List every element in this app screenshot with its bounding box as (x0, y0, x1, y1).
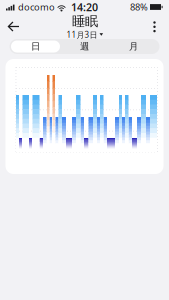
staticText: 11月3日 (66, 29, 97, 40)
button[interactable]: Back (0, 14, 29, 38)
button[interactable]: 11月3日 (66, 29, 103, 40)
button[interactable]: 日 (11, 40, 60, 52)
staticText: 14:20 (71, 0, 98, 14)
staticText: 月 (129, 41, 138, 52)
button[interactable]: 月 (109, 40, 158, 52)
button[interactable]: More options (141, 14, 169, 38)
staticText: 88% (130, 1, 148, 13)
staticText: 日 (31, 41, 40, 52)
staticText: docomo (18, 1, 55, 13)
button[interactable]: 週 (60, 40, 109, 52)
staticText: 週 (80, 41, 89, 52)
staticText: 睡眠 (72, 13, 98, 29)
